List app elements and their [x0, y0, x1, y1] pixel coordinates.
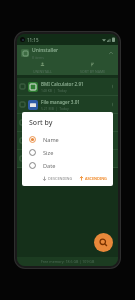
staticText: Sort by	[29, 118, 53, 128]
button[interactable]: DESCENDING	[41, 175, 74, 182]
other: More options	[110, 120, 115, 125]
button[interactable]: SORT BY NAME	[67, 61, 118, 75]
button[interactable]: Size	[29, 146, 108, 159]
staticText: File manager 3.01	[41, 99, 80, 105]
staticText: Size	[43, 149, 54, 157]
button[interactable]: Name	[29, 133, 108, 146]
staticText: To Do List 4.24	[41, 135, 73, 141]
staticText: ASCENDING	[85, 176, 107, 181]
staticText: 11:15	[27, 37, 39, 43]
button[interactable]: ASCENDING	[78, 175, 108, 182]
other: Expand	[108, 50, 114, 56]
staticText: BMI Calculator 2.91	[41, 81, 84, 87]
button[interactable]: Uninstaller	[17, 45, 118, 61]
button[interactable]: BMI Calculator 2.91	[17, 78, 118, 95]
button[interactable]: Search	[94, 233, 113, 252]
button[interactable]: To Do List 4.24	[17, 132, 118, 149]
other: More options	[110, 138, 115, 143]
button[interactable]: Sound Meter 2.01	[17, 114, 118, 131]
staticText: SORT BY NAME	[80, 69, 106, 74]
staticText: 4.56 MB | Today	[41, 160, 69, 165]
other: More options	[110, 102, 115, 107]
staticText: DESCENDING	[48, 176, 73, 181]
button[interactable]: Date	[29, 159, 108, 172]
staticText: UNINSTALL	[33, 69, 52, 74]
staticText: 5.21 MB | Today	[41, 106, 69, 111]
button[interactable]: Voice Recorder 2.01	[17, 150, 118, 167]
other: More options	[110, 156, 115, 161]
staticText: Sound Meter 2.01	[41, 117, 80, 123]
staticText: 148 KB | Today	[41, 88, 67, 93]
staticText: Uninstaller	[32, 47, 59, 54]
button[interactable]: File manager 3.01	[17, 96, 118, 113]
staticText: Voice Recorder 2.01	[41, 153, 85, 159]
staticText: Name	[43, 136, 59, 144]
staticText: Date	[43, 162, 56, 170]
staticText: Free memory: 18.6 GB | 109 GB	[41, 259, 95, 264]
staticText: 2.83 MB | Today	[41, 124, 69, 129]
button[interactable]: UNINSTALL	[17, 61, 67, 75]
other: More options	[110, 84, 115, 89]
staticText: 8 items	[32, 55, 45, 60]
